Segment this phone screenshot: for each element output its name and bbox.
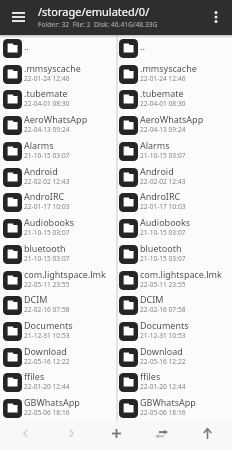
staticText: Audiobooks	[140, 216, 191, 228]
staticText: 22-04-01 08:30	[140, 99, 186, 108]
staticText: ..	[24, 40, 29, 52]
staticText: com.lightspace.lmk	[140, 268, 222, 280]
staticText: 22-01-20 12:44	[140, 382, 186, 391]
staticText: 22-02-16 07:58	[24, 305, 70, 314]
staticText: 22-05-11 23:55	[24, 280, 70, 289]
staticText: 21-10-15 03:07	[24, 228, 70, 237]
button[interactable]: Android	[0, 164, 116, 190]
button[interactable]: com.lightspace.lmk	[0, 267, 116, 293]
staticText: /storage/emulated/0/	[38, 4, 150, 19]
staticText: DCIM	[24, 293, 48, 305]
button[interactable]: Back	[5, 421, 45, 450]
staticText: Android	[140, 165, 174, 177]
staticText: 21-10-15 03:07	[140, 254, 186, 263]
button[interactable]: AndroIRC	[116, 189, 232, 215]
staticText: 21-10-15 03:07	[24, 151, 70, 160]
button[interactable]: More options	[202, 0, 232, 35]
staticText: 22-04-13 09:24	[140, 125, 186, 134]
staticText: 21-10-15 03:07	[140, 228, 186, 237]
button[interactable]: .tubemate	[0, 86, 116, 112]
staticText: 22-04-13 09:24	[24, 125, 70, 134]
staticText: 22-01-24 12:46	[140, 74, 186, 83]
button[interactable]: AndroIRC	[0, 189, 116, 215]
staticText: 22-05-06 18:16	[24, 408, 70, 417]
staticText: Documents	[24, 319, 73, 331]
staticText: AndroIRC	[24, 190, 65, 202]
staticText: GBWhatsApp	[24, 396, 80, 408]
button[interactable]: bluetooth	[0, 241, 116, 267]
button[interactable]: ..	[116, 35, 232, 61]
button[interactable]: Documents	[116, 318, 232, 344]
staticText: 22-05-06 18:16	[140, 408, 186, 417]
button[interactable]: AeroWhatsApp	[116, 112, 232, 138]
staticText: 22-02-02 12:43	[140, 177, 186, 186]
staticText: ..	[140, 40, 145, 52]
staticText: 22-01-17 10:03	[140, 202, 186, 211]
staticText: Documents	[140, 319, 189, 331]
staticText: Alarms	[24, 139, 54, 151]
staticText: 21-10-15 03:07	[140, 151, 186, 160]
button[interactable]: ffiles	[116, 369, 232, 395]
staticText: 21-12-31 10:53	[140, 331, 186, 340]
staticText: bluetooth	[24, 242, 66, 254]
staticText: GBWhatsApp	[140, 396, 196, 408]
staticText: AeroWhatsApp	[140, 113, 204, 125]
staticText: AndroIRC	[140, 190, 181, 202]
button[interactable]: bluetooth	[116, 241, 232, 267]
staticText: .tubemate	[140, 87, 184, 99]
button[interactable]: Alarms	[116, 138, 232, 164]
staticText: ffiles	[24, 370, 45, 382]
button[interactable]: Audiobooks	[116, 215, 232, 241]
staticText: 22-05-16 12:22	[140, 357, 186, 366]
button[interactable]: Audiobooks	[0, 215, 116, 241]
button[interactable]: AeroWhatsApp	[0, 112, 116, 138]
staticText: Android	[24, 165, 58, 177]
staticText: ffiles	[140, 370, 161, 382]
staticText: 21-10-15 03:07	[24, 254, 70, 263]
staticText: 22-01-17 10:03	[24, 202, 70, 211]
button[interactable]: .tubemate	[116, 86, 232, 112]
staticText: 22-01-20 12:44	[24, 382, 70, 391]
staticText: 22-05-16 12:22	[24, 357, 70, 366]
button[interactable]: DCIM	[116, 292, 232, 318]
button[interactable]: Menu	[0, 0, 36, 35]
button[interactable]: Android	[116, 164, 232, 190]
button[interactable]: Alarms	[0, 138, 116, 164]
button[interactable]: Up	[187, 421, 227, 450]
button[interactable]: Documents	[0, 318, 116, 344]
button[interactable]: .mmsyscache	[116, 61, 232, 87]
staticText: Download	[24, 345, 67, 357]
staticText: .tubemate	[24, 87, 68, 99]
button[interactable]: com.lightspace.lmk	[116, 267, 232, 293]
staticText: 22-02-02 12:43	[24, 177, 70, 186]
staticText: DCIM	[140, 293, 164, 305]
staticText: com.lightspace.lmk	[24, 268, 106, 280]
staticText: 22-04-01 08:30	[24, 99, 70, 108]
staticText: Alarms	[140, 139, 170, 151]
staticText: 22-02-16 07:58	[140, 305, 186, 314]
staticText: bluetooth	[140, 242, 182, 254]
button[interactable]: Compare	[141, 421, 181, 450]
button[interactable]: ffiles	[0, 369, 116, 395]
staticText: Folder: 32 File: 2 Disk: 46.41G/48.33G	[38, 20, 158, 29]
staticText: .mmsyscache	[24, 62, 81, 74]
button[interactable]: Download	[0, 344, 116, 370]
staticText: 22-05-11 23:55	[140, 280, 186, 289]
staticText: 21-12-31 10:53	[24, 331, 70, 340]
button[interactable]: GBWhatsApp	[0, 395, 116, 421]
staticText: .mmsyscache	[140, 62, 197, 74]
button[interactable]: .mmsyscache	[0, 61, 116, 87]
button[interactable]: New	[96, 421, 136, 450]
button[interactable]: GBWhatsApp	[116, 395, 232, 421]
staticText: 22-01-24 12:46	[24, 74, 70, 83]
button[interactable]: ..	[0, 35, 116, 61]
staticText: Download	[140, 345, 183, 357]
staticText: Audiobooks	[24, 216, 75, 228]
staticText: AeroWhatsApp	[24, 113, 88, 125]
button[interactable]: DCIM	[0, 292, 116, 318]
button[interactable]: Download	[116, 344, 232, 370]
button[interactable]: Forward	[51, 421, 91, 450]
